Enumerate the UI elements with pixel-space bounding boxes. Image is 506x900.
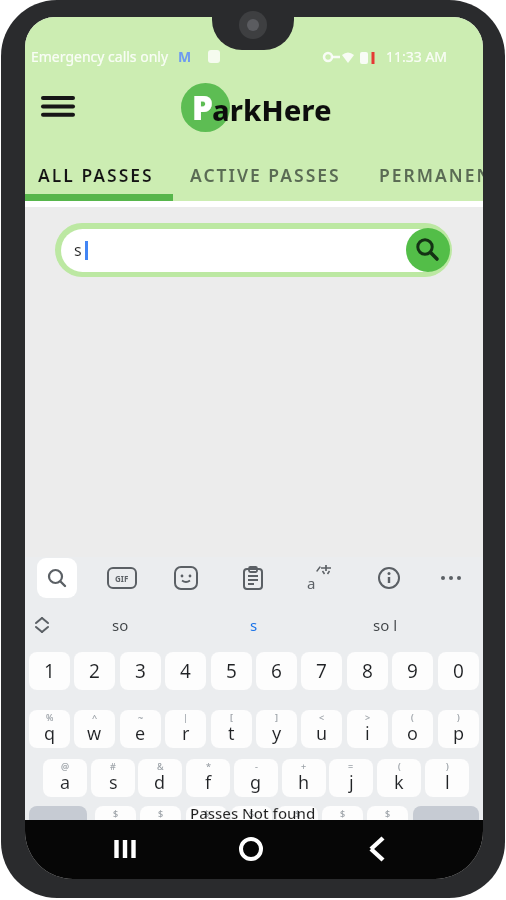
staticText: $ bbox=[204, 807, 210, 819]
button[interactable]: 7 bbox=[301, 652, 342, 690]
staticText: 1 bbox=[44, 658, 55, 684]
staticText: k bbox=[394, 770, 404, 795]
button[interactable]: > bbox=[347, 710, 388, 748]
staticText: $ bbox=[113, 807, 119, 819]
button[interactable]: [ bbox=[211, 710, 252, 748]
button[interactable]: so l bbox=[340, 607, 430, 643]
staticText: 8 bbox=[362, 658, 373, 684]
button[interactable]: # bbox=[91, 759, 135, 797]
button[interactable]: ) bbox=[425, 759, 469, 797]
staticText: so bbox=[112, 615, 129, 635]
button[interactable]: 0 bbox=[438, 652, 479, 690]
button[interactable] bbox=[431, 558, 471, 598]
staticText: PERMANENT bbox=[379, 163, 483, 187]
staticText: h bbox=[298, 770, 310, 795]
button[interactable] bbox=[226, 825, 276, 873]
staticText: > bbox=[365, 711, 371, 723]
staticText: * bbox=[206, 760, 211, 772]
staticText: 11:33 AM bbox=[386, 47, 448, 66]
staticText: $ bbox=[158, 807, 164, 819]
button[interactable]: - bbox=[234, 759, 278, 797]
button[interactable]: + bbox=[282, 759, 326, 797]
staticText: y bbox=[272, 721, 282, 746]
staticText: Emergency calls only bbox=[31, 47, 169, 66]
button[interactable]: a bbox=[300, 558, 340, 598]
button[interactable]: % bbox=[29, 710, 70, 748]
button[interactable]: s bbox=[209, 607, 299, 643]
staticText: M bbox=[178, 47, 192, 66]
staticText: Passes Not found bbox=[190, 803, 316, 823]
staticText: ( bbox=[411, 711, 414, 723]
button[interactable]: ~ bbox=[120, 710, 161, 748]
staticText: d bbox=[154, 770, 166, 795]
staticText: 5 bbox=[226, 658, 237, 684]
button[interactable] bbox=[29, 806, 87, 844]
button[interactable]: = bbox=[329, 759, 373, 797]
button[interactable]: $ bbox=[277, 806, 318, 844]
button[interactable] bbox=[233, 558, 273, 598]
button[interactable] bbox=[413, 806, 479, 844]
button[interactable]: $ bbox=[186, 806, 227, 844]
staticText: g bbox=[250, 770, 262, 795]
button[interactable]: ^ bbox=[74, 710, 115, 748]
staticText: $ bbox=[295, 807, 301, 819]
staticText: 9 bbox=[407, 658, 418, 684]
button[interactable]: 1 bbox=[29, 652, 70, 690]
staticText: - bbox=[255, 760, 258, 772]
staticText: i bbox=[365, 721, 370, 746]
button[interactable]: & bbox=[138, 759, 182, 797]
staticText: = bbox=[348, 760, 354, 772]
button[interactable]: GIF bbox=[102, 558, 142, 598]
button[interactable]: $ bbox=[367, 806, 408, 844]
button[interactable]: ( bbox=[377, 759, 421, 797]
button[interactable]: s bbox=[55, 223, 452, 277]
button[interactable] bbox=[190, 157, 350, 194]
button[interactable]: $ bbox=[95, 806, 136, 844]
staticText: % bbox=[46, 711, 54, 723]
staticText: GIF bbox=[115, 573, 129, 584]
button[interactable]: 2 bbox=[74, 652, 115, 690]
button[interactable] bbox=[406, 228, 450, 272]
staticText: @ bbox=[61, 760, 70, 772]
staticText: P bbox=[192, 85, 213, 130]
staticText: $ bbox=[385, 807, 391, 819]
button[interactable] bbox=[379, 157, 483, 194]
button[interactable] bbox=[100, 825, 150, 873]
button[interactable] bbox=[352, 825, 402, 873]
button[interactable] bbox=[166, 558, 206, 598]
button[interactable] bbox=[369, 558, 409, 598]
staticText: ACTIVE PASSES bbox=[190, 163, 341, 187]
button[interactable]: 3 bbox=[120, 652, 161, 690]
button[interactable]: so bbox=[75, 607, 165, 643]
staticText: t bbox=[228, 721, 235, 746]
staticText: s bbox=[74, 239, 82, 261]
staticText: q bbox=[44, 721, 56, 746]
staticText: e bbox=[135, 721, 146, 746]
button[interactable]: 8 bbox=[347, 652, 388, 690]
button[interactable] bbox=[35, 87, 81, 127]
button[interactable]: 9 bbox=[392, 652, 433, 690]
staticText: 0 bbox=[453, 658, 464, 684]
button[interactable] bbox=[27, 609, 59, 641]
button[interactable]: 5 bbox=[211, 652, 252, 690]
button[interactable] bbox=[25, 157, 185, 194]
staticText: $ bbox=[340, 807, 346, 819]
staticText: ) bbox=[457, 711, 460, 723]
staticText: [ bbox=[230, 711, 233, 723]
staticText: 6 bbox=[271, 658, 282, 684]
button[interactable]: $ bbox=[140, 806, 181, 844]
button[interactable]: 4 bbox=[165, 652, 206, 690]
button[interactable]: $ bbox=[231, 806, 272, 844]
button[interactable]: $ bbox=[322, 806, 363, 844]
button[interactable]: 6 bbox=[256, 652, 297, 690]
button[interactable]: * bbox=[186, 759, 230, 797]
button[interactable] bbox=[37, 558, 77, 598]
button[interactable]: < bbox=[301, 710, 342, 748]
button[interactable]: ( bbox=[392, 710, 433, 748]
staticText: < bbox=[319, 711, 325, 723]
button[interactable]: | bbox=[165, 710, 206, 748]
button[interactable]: ] bbox=[256, 710, 297, 748]
button[interactable]: @ bbox=[43, 759, 87, 797]
staticText: so l bbox=[373, 615, 398, 635]
button[interactable]: ) bbox=[438, 710, 479, 748]
